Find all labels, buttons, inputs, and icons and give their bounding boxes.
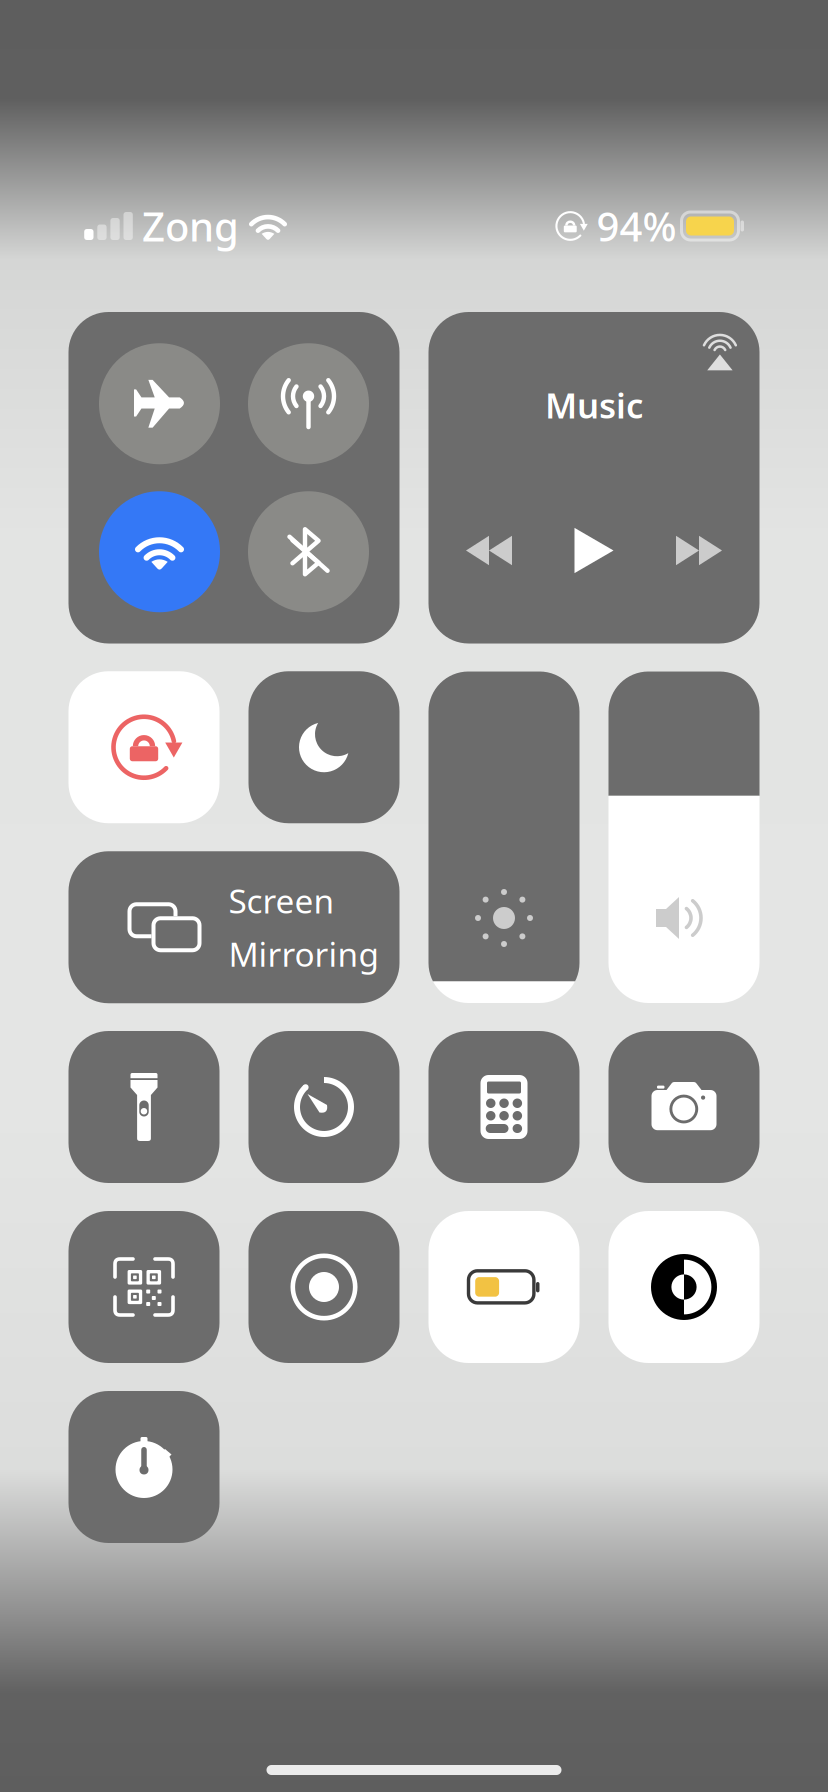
button[interactable]: Bluetooth [248,491,369,612]
button[interactable]: Dark Mode [608,1211,759,1363]
button[interactable]: Airplane Mode [99,343,220,464]
button[interactable]: Calculator [428,1031,579,1183]
button[interactable]: Next [676,536,722,565]
button[interactable]: Screen [68,851,399,1003]
button[interactable]: Camera [608,1031,759,1183]
staticText: Music [545,382,643,428]
button[interactable]: Volume [608,671,759,1003]
button[interactable]: Flashlight [68,1031,219,1183]
button[interactable]: AirPlay [701,331,739,371]
staticText: 94% [596,199,676,252]
button[interactable]: Cellular Data [248,343,369,464]
button[interactable]: Scan QR Code [68,1211,219,1363]
staticText: Zong [142,199,239,252]
button[interactable]: Screen Recording [248,1211,399,1363]
button[interactable]: Low Power Mode [428,1211,579,1363]
button[interactable]: Stopwatch [68,1391,219,1543]
button[interactable]: Previous [466,536,512,565]
button[interactable]: Wi-Fi [99,491,220,612]
button[interactable]: Rotation Lock [68,671,219,823]
staticText: Mirroring [228,932,379,976]
button[interactable]: Play [574,528,613,573]
staticText: Screen [228,878,334,923]
button[interactable]: Timer [248,1031,399,1183]
button[interactable]: Do Not Disturb [248,671,399,823]
button[interactable]: Brightness [428,671,579,1003]
